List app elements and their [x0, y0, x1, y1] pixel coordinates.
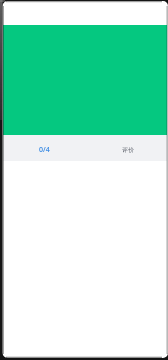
staticText: 评价 [122, 146, 134, 154]
staticText: 0/4 [39, 145, 50, 155]
button[interactable]: Header banner [3, 25, 167, 135]
button[interactable]: 评价 [85, 135, 167, 161]
button[interactable]: 0/4 [3, 135, 85, 161]
